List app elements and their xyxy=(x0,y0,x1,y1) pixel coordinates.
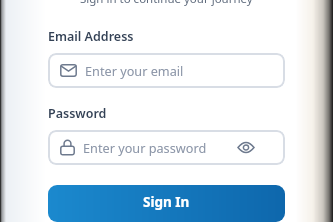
staticText: Sign in to continue your journey xyxy=(80,0,253,7)
staticText: Email Address xyxy=(48,28,134,45)
staticText: Password xyxy=(48,105,107,122)
button[interactable]: Enter your password xyxy=(48,130,285,165)
button[interactable]: Sign In xyxy=(48,185,285,222)
button[interactable]: Enter your email xyxy=(48,53,285,88)
staticText: Enter your email xyxy=(85,62,184,79)
staticText: Sign In xyxy=(143,193,190,211)
staticText: Enter your password xyxy=(83,139,207,156)
